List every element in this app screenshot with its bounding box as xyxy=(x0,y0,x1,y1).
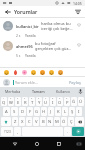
staticText: Ç xyxy=(70,119,73,125)
staticText: ahmet96 xyxy=(16,44,33,49)
button[interactable]: Ü xyxy=(78,97,84,106)
button[interactable]: Emoji xyxy=(3,69,9,75)
staticText: Yorumlar xyxy=(14,8,38,15)
button[interactable]: , xyxy=(14,127,21,136)
staticText: bu fotoğraf gerçekten çok güzel çekilmiş… xyxy=(35,41,73,51)
button[interactable]: X xyxy=(19,117,25,126)
button[interactable]: 1 xyxy=(1,97,7,106)
button[interactable]: G xyxy=(34,107,40,116)
button[interactable]: J xyxy=(48,107,54,116)
button[interactable]: Keyboard xyxy=(74,139,83,148)
button[interactable]: Voice input xyxy=(76,87,85,96)
button[interactable]: Back xyxy=(3,7,12,16)
staticText: 1 xyxy=(3,97,5,100)
button[interactable]: 4 xyxy=(22,97,28,106)
staticText: Z xyxy=(14,119,17,125)
button[interactable]: 2 xyxy=(8,97,14,106)
button[interactable]: Like xyxy=(75,21,82,28)
staticText: kullanici_bir xyxy=(16,24,39,29)
button[interactable]: Filter xyxy=(73,7,82,16)
button[interactable]: N xyxy=(47,117,53,126)
staticText: 3 xyxy=(17,97,19,100)
button[interactable]: S xyxy=(11,107,18,116)
button[interactable]: 9 xyxy=(57,97,63,106)
staticText: M xyxy=(55,119,59,125)
button[interactable]: . xyxy=(64,127,71,136)
button[interactable]: H xyxy=(41,107,47,116)
button[interactable]: 3 xyxy=(15,97,21,106)
button[interactable]: Shift xyxy=(1,117,11,126)
button[interactable]: 6 xyxy=(36,97,42,106)
staticText: I xyxy=(78,109,80,115)
button[interactable]: B xyxy=(40,117,46,126)
button[interactable]: 0 xyxy=(64,97,70,106)
staticText: ?123 xyxy=(4,130,11,134)
button[interactable]: M xyxy=(54,117,60,126)
button[interactable]: Kullanıcı xyxy=(51,87,76,96)
button[interactable]: Backspace xyxy=(75,117,84,126)
staticText: P xyxy=(66,100,69,106)
button[interactable]: K xyxy=(55,107,61,116)
button[interactable]: Ö xyxy=(61,117,67,126)
staticText: D xyxy=(21,109,25,115)
button[interactable]: kullanici_bir xyxy=(0,18,85,38)
staticText: 5 xyxy=(31,97,33,100)
button[interactable]: Ğ xyxy=(71,97,77,106)
button[interactable]: Tamam xyxy=(26,87,51,96)
button[interactable]: 7 xyxy=(43,97,49,106)
button[interactable]: Emoji xyxy=(30,69,36,75)
staticText: W xyxy=(9,100,13,106)
staticText: 2 s xyxy=(16,33,21,37)
staticText: Ğ xyxy=(72,99,76,105)
button[interactable]: Yanıtla xyxy=(25,53,36,57)
button[interactable]: Emoji xyxy=(48,69,54,75)
button[interactable]: Ş xyxy=(69,107,75,116)
button[interactable]: 5 xyxy=(29,97,35,106)
staticText: Ö xyxy=(62,119,66,125)
staticText: 4 xyxy=(24,97,26,100)
button[interactable]: L xyxy=(62,107,68,116)
staticText: B xyxy=(42,119,45,125)
button[interactable]: ahmet96 xyxy=(0,38,85,58)
button[interactable]: Paylaş xyxy=(68,79,82,86)
button[interactable]: Emoji xyxy=(39,69,45,75)
button[interactable]: Emoji xyxy=(12,69,18,75)
button[interactable]: Ç xyxy=(68,117,74,126)
staticText: U xyxy=(44,100,48,106)
staticText: C xyxy=(28,119,31,125)
staticText: . xyxy=(67,129,69,134)
staticText: S xyxy=(13,109,16,115)
staticText: G xyxy=(35,109,39,115)
button[interactable]: Home xyxy=(31,138,42,149)
button[interactable]: Merhaba xyxy=(0,87,26,96)
staticText: Ü xyxy=(79,99,83,105)
button[interactable]: ?123 xyxy=(1,127,13,136)
button[interactable]: Like xyxy=(75,41,82,48)
button[interactable]: Emoji xyxy=(21,69,27,75)
button[interactable]: Yanıtla xyxy=(25,33,36,37)
staticText: E xyxy=(17,100,20,106)
staticText: I xyxy=(52,100,54,106)
button[interactable]: 8 xyxy=(50,97,56,106)
staticText: Ş xyxy=(71,109,74,115)
staticText: , xyxy=(17,129,19,134)
button[interactable]: Z xyxy=(12,117,18,126)
button[interactable]: C xyxy=(26,117,32,126)
button[interactable]: Send xyxy=(72,127,84,136)
staticText: R xyxy=(24,100,27,106)
staticText: 2 xyxy=(10,97,12,100)
staticText: Merhaba xyxy=(5,89,21,94)
button[interactable]: Yorum ekle... xyxy=(13,80,66,85)
button[interactable]: Recents xyxy=(53,138,64,149)
button[interactable]: V xyxy=(33,117,39,126)
button[interactable]: A xyxy=(3,107,10,116)
button[interactable]: Back xyxy=(9,138,20,149)
staticText: 14:05 xyxy=(73,1,82,6)
button[interactable]: I xyxy=(76,107,82,116)
button[interactable]: F xyxy=(27,107,33,116)
staticText: 9 xyxy=(59,97,61,100)
button[interactable]: Emoji xyxy=(57,69,63,75)
staticText: 7 xyxy=(45,97,47,100)
button[interactable]: D xyxy=(19,107,26,116)
